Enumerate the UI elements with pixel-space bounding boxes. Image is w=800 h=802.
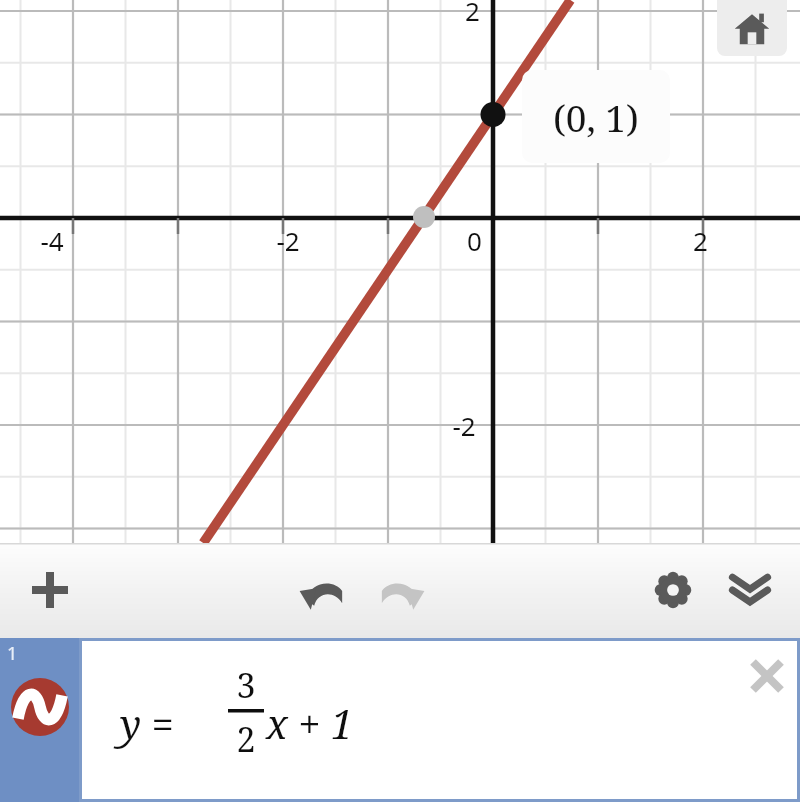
button[interactable]: (0, 1) bbox=[522, 70, 670, 163]
button[interactable]: Home bbox=[717, 0, 787, 56]
staticText: (0, 1) bbox=[553, 92, 639, 142]
button[interactable]: Collapse bbox=[714, 554, 786, 626]
staticText: -4 bbox=[40, 223, 64, 258]
button[interactable]: Add expression bbox=[14, 554, 86, 626]
staticText: 2 bbox=[693, 223, 708, 258]
button[interactable]: Delete expression bbox=[731, 640, 800, 712]
button[interactable] bbox=[82, 641, 797, 799]
button[interactable]: 1 bbox=[0, 638, 79, 802]
staticText: -2 bbox=[452, 408, 476, 443]
staticText: 2 bbox=[465, 0, 480, 28]
staticText: x + 1 bbox=[266, 696, 354, 750]
button[interactable]: Undo bbox=[286, 554, 358, 626]
button[interactable]: Redo bbox=[366, 554, 438, 626]
staticText: 3 bbox=[224, 662, 268, 706]
staticText: -2 bbox=[276, 223, 300, 258]
staticText: 1 bbox=[7, 641, 18, 666]
staticText: 2 bbox=[224, 716, 268, 760]
staticText: y = bbox=[120, 696, 174, 750]
staticText: 0 bbox=[467, 223, 482, 258]
button[interactable]: Settings bbox=[637, 554, 709, 626]
